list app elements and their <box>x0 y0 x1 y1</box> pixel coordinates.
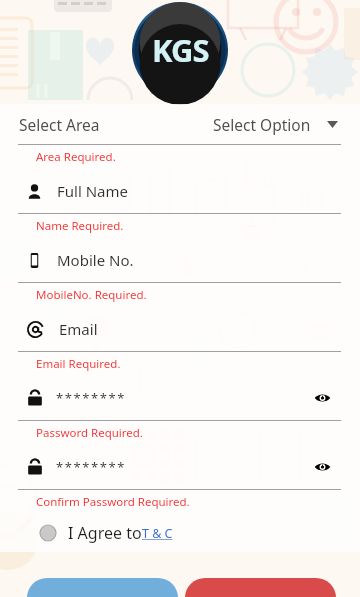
button[interactable]: Confirm password <box>0 445 360 489</box>
staticText: Full Name <box>57 181 128 201</box>
button[interactable]: Email <box>0 307 360 351</box>
staticText: Area Required. <box>36 149 116 165</box>
staticText: Select Option <box>213 114 311 135</box>
other: Mobile number <box>26 252 43 269</box>
button[interactable]: GO TO START <box>185 578 336 597</box>
button[interactable]: Mobile number <box>0 238 360 282</box>
staticText: Confirm Password Required. <box>36 494 190 510</box>
staticText: ******** <box>56 389 127 407</box>
staticText: I Agree to <box>68 522 142 544</box>
staticText: Select Area <box>19 114 100 135</box>
other: Open area dropdown <box>327 121 338 128</box>
button[interactable]: Password <box>0 376 360 420</box>
staticText: Email <box>59 319 98 339</box>
button[interactable]: T & C <box>142 525 173 542</box>
staticText: Password Required. <box>36 425 143 441</box>
staticText: ******** <box>56 458 127 476</box>
other: Email <box>26 320 45 339</box>
staticText: Mobile No. <box>57 250 134 270</box>
button[interactable]: Toggle password visibility <box>310 386 334 410</box>
button[interactable]: Full name <box>0 169 360 213</box>
staticText: T & C <box>142 525 173 542</box>
other: Full name <box>26 183 43 200</box>
staticText: KGS <box>152 29 209 71</box>
button[interactable]: Select Area <box>0 104 360 144</box>
button[interactable]: I Agree to <box>0 514 360 552</box>
button[interactable]: REGISTER <box>27 578 178 597</box>
staticText: Email Required. <box>36 356 121 372</box>
staticText: MobileNo. Required. <box>36 287 147 303</box>
button[interactable]: Toggle password visibility <box>310 455 334 479</box>
other: Confirm password <box>26 458 44 476</box>
other: Password <box>26 389 44 407</box>
staticText: Name Required. <box>36 218 124 234</box>
